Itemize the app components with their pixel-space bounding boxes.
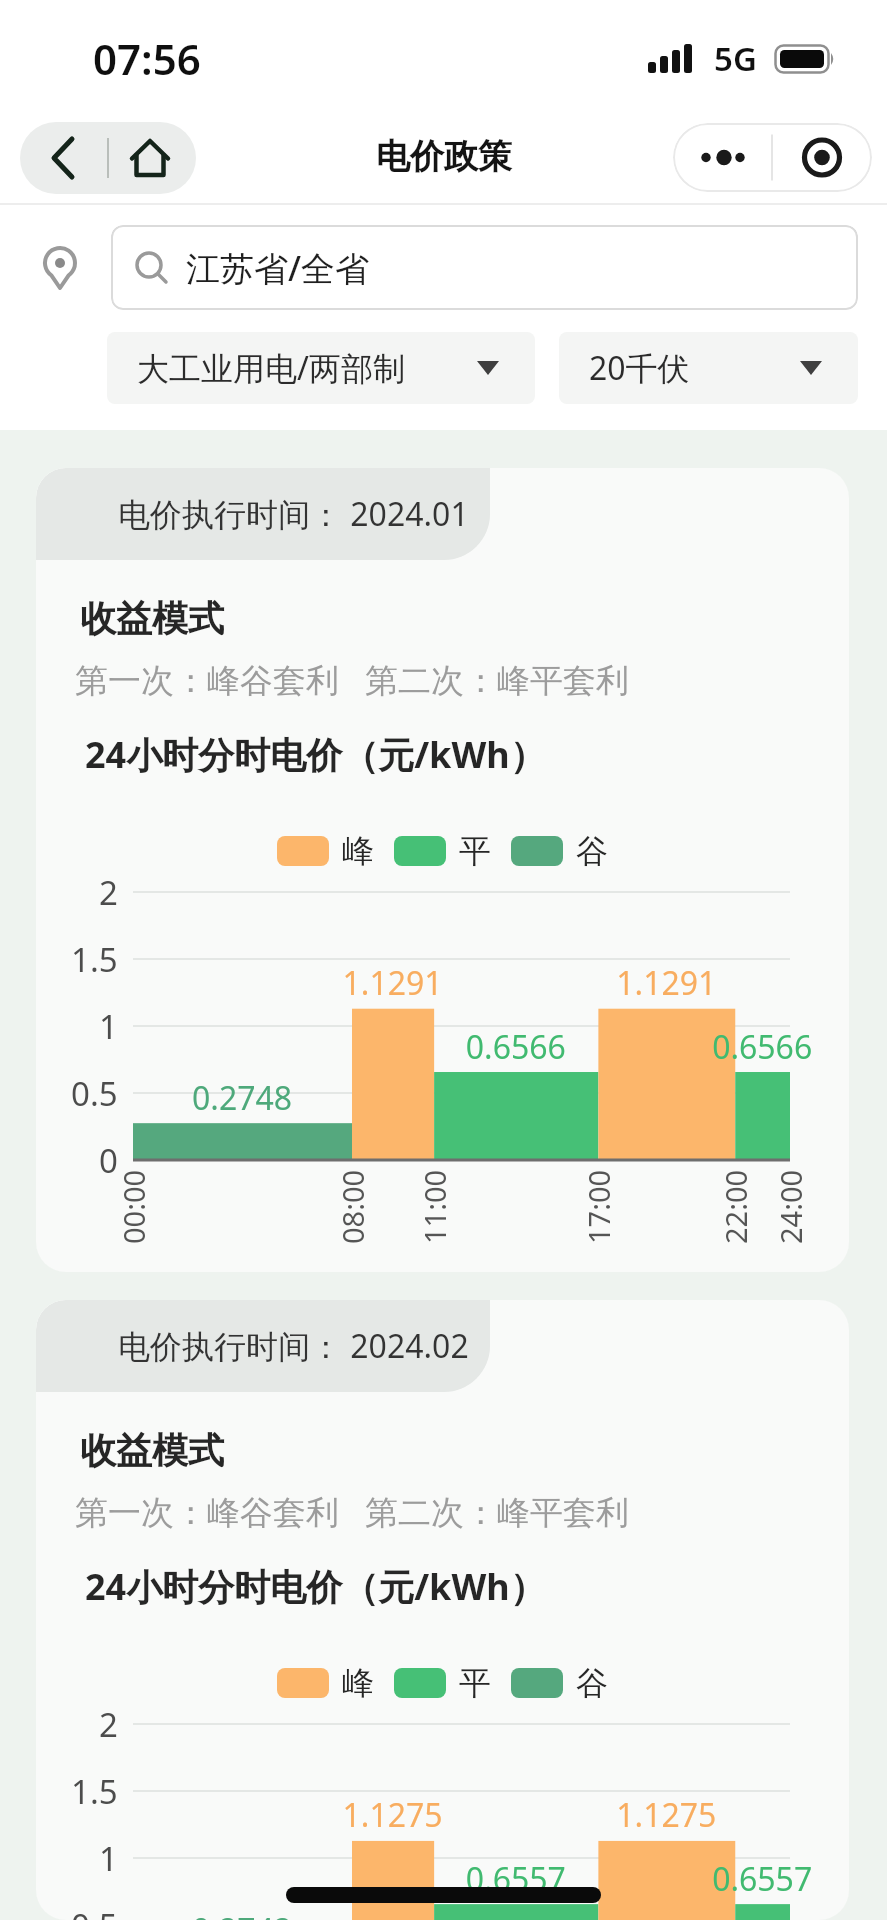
staticText: 24小时分时电价（元/kWh） xyxy=(85,730,546,779)
staticText: 第一次：峰谷套利 xyxy=(75,660,339,702)
staticText: 5G xyxy=(714,36,757,81)
staticText: 平 xyxy=(459,831,491,871)
button[interactable]: 大工业用电/两部制 xyxy=(107,332,535,404)
staticText: 峰 xyxy=(342,1663,374,1703)
staticText: 第二次：峰平套利 xyxy=(365,1492,629,1534)
button[interactable]: 江苏省/全省 xyxy=(111,225,858,310)
staticText: 第二次：峰平套利 xyxy=(365,660,629,702)
button[interactable]: 20千伏 xyxy=(559,332,858,404)
staticText: 第一次：峰谷套利 xyxy=(75,1492,339,1534)
staticText: 江苏省/全省 xyxy=(186,245,370,291)
button[interactable] xyxy=(20,122,196,194)
staticText: 收益模式 xyxy=(80,1428,224,1473)
staticText: 平 xyxy=(459,1663,491,1703)
staticText: 收益模式 xyxy=(80,596,224,641)
staticText: 电价政策 xyxy=(376,135,512,178)
staticText: 峰 xyxy=(342,831,374,871)
staticText: 07:56 xyxy=(93,30,201,87)
staticText: 谷 xyxy=(576,1663,608,1703)
staticText: 大工业用电/两部制 xyxy=(137,346,405,390)
staticText: 24小时分时电价（元/kWh） xyxy=(85,1562,546,1611)
staticText: 20千伏 xyxy=(589,346,690,390)
button[interactable] xyxy=(673,123,872,192)
staticText: 谷 xyxy=(576,831,608,871)
staticText: 电价执行时间： 2024.01 xyxy=(118,492,469,536)
staticText: 电价执行时间： 2024.02 xyxy=(118,1324,469,1368)
